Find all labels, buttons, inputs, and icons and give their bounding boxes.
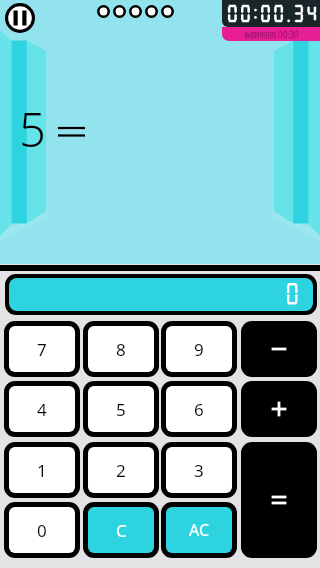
staticText: 5 <box>19 97 46 161</box>
staticText: C <box>116 519 127 542</box>
staticText: 2 <box>116 459 126 482</box>
staticText: 7 <box>37 338 47 361</box>
button[interactable]: Plus <box>241 381 317 437</box>
button[interactable]: 2 <box>83 442 159 498</box>
staticText: 0 <box>37 519 47 542</box>
staticText: 4 <box>37 398 47 421</box>
button[interactable]: 5 <box>83 381 159 437</box>
button[interactable]: 4 <box>4 381 80 437</box>
staticText: 6 <box>194 398 204 421</box>
button[interactable]: 0 <box>4 502 80 558</box>
button[interactable]: 3 <box>161 442 237 498</box>
button[interactable]: 6 <box>161 381 237 437</box>
button[interactable]: AC <box>161 502 237 558</box>
button[interactable]: 7 <box>4 321 80 377</box>
staticText: AC <box>189 519 210 541</box>
staticText: 5 <box>116 398 126 421</box>
button[interactable]: 1 <box>4 442 80 498</box>
button[interactable]: Equals <box>241 442 317 558</box>
button[interactable]: 8 <box>83 321 159 377</box>
button[interactable]: Minus <box>241 321 317 377</box>
staticText: 3 <box>194 459 204 482</box>
staticText: 8 <box>116 338 126 361</box>
button[interactable]: 9 <box>161 321 237 377</box>
button[interactable]: C <box>83 502 159 558</box>
staticText: 9 <box>194 338 204 361</box>
button[interactable]: Pause <box>5 3 35 33</box>
staticText: 1 <box>37 459 47 482</box>
staticText: 制限時間 00:30 <box>244 29 299 40</box>
